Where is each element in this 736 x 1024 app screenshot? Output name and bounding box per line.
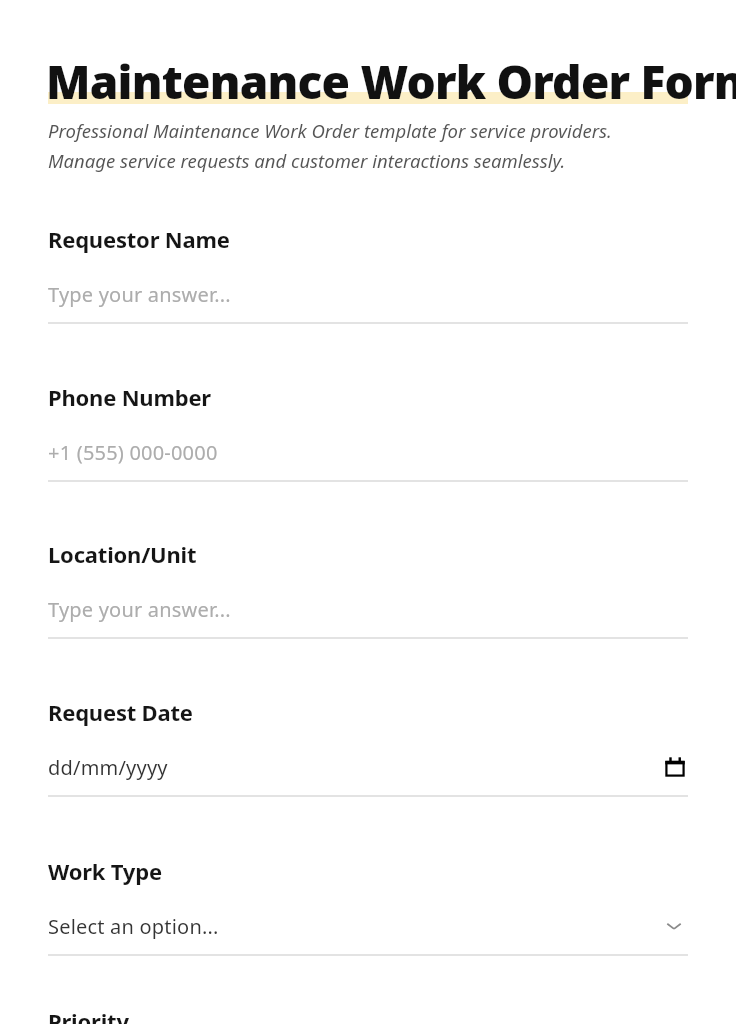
button[interactable]: Type your answer... xyxy=(48,577,688,637)
staticText: Select an option... xyxy=(48,913,219,940)
staticText: Requestor Name xyxy=(48,224,230,254)
staticText: +1 (555) 000-0000 xyxy=(48,439,218,466)
staticText: Manage service requests and customer int… xyxy=(48,148,566,173)
staticText: Phone Number xyxy=(48,382,211,412)
button[interactable]: dd/mm/yyyy xyxy=(48,735,688,795)
staticText: Location/Unit xyxy=(48,539,197,569)
staticText: Type your answer... xyxy=(48,281,231,308)
staticText: Type your answer... xyxy=(48,596,231,623)
staticText: Professional Maintenance Work Order temp… xyxy=(48,118,612,143)
other: Open date picker xyxy=(664,756,686,778)
button[interactable]: Select an option... xyxy=(48,894,688,954)
button[interactable]: +1 (555) 000-0000 xyxy=(48,420,688,480)
other: Open options xyxy=(662,914,686,938)
staticText: Maintenance Work Order Form xyxy=(46,50,736,113)
staticText: Priority xyxy=(48,1006,129,1024)
staticText: Request Date xyxy=(48,697,193,727)
button[interactable]: Type your answer... xyxy=(48,262,688,322)
staticText: Work Type xyxy=(48,856,162,886)
staticText: dd/mm/yyyy xyxy=(48,754,168,781)
